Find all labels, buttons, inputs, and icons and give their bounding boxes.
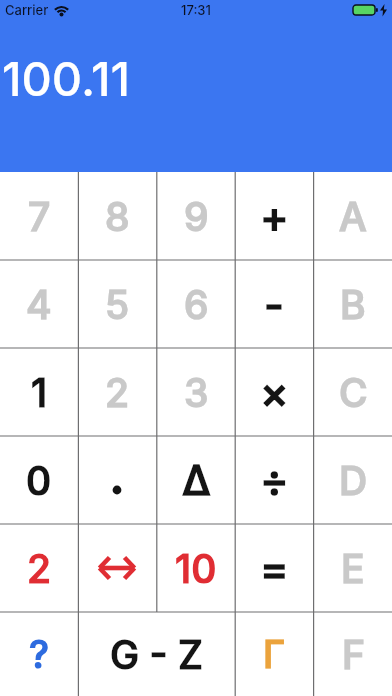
button[interactable]: E: [314, 524, 392, 612]
staticText: G - Z: [110, 631, 203, 678]
button[interactable]: 9: [157, 172, 235, 260]
staticText: F: [342, 631, 365, 678]
button[interactable]: B: [314, 260, 392, 348]
button[interactable]: ×: [235, 348, 313, 436]
staticText: 10: [175, 545, 217, 592]
button[interactable]: [78, 436, 156, 524]
staticText: B: [340, 281, 366, 328]
button[interactable]: 3: [157, 348, 235, 436]
staticText: 4: [26, 281, 52, 328]
staticText: Carrier: [5, 2, 49, 18]
staticText: 100.11: [2, 50, 131, 107]
button[interactable]: 0: [0, 436, 78, 524]
staticText: +: [260, 190, 289, 242]
button[interactable]: ÷: [235, 436, 313, 524]
button[interactable]: -: [235, 260, 313, 348]
button[interactable]: F: [314, 612, 392, 696]
staticText: 3: [184, 369, 209, 416]
staticText: ×: [260, 366, 289, 418]
staticText: Δ: [182, 455, 211, 505]
button[interactable]: [78, 524, 156, 612]
button[interactable]: ?: [0, 612, 78, 696]
button[interactable]: G - Z: [78, 612, 235, 696]
button[interactable]: Δ: [157, 436, 235, 524]
button[interactable]: C: [314, 348, 392, 436]
staticText: D: [339, 457, 368, 504]
button[interactable]: 7: [0, 172, 78, 260]
button[interactable]: A: [314, 172, 392, 260]
staticText: 2: [105, 369, 130, 416]
staticText: 17:31: [181, 2, 211, 18]
staticText: ?: [29, 631, 50, 677]
button[interactable]: 2: [0, 524, 78, 612]
button[interactable]: 4: [0, 260, 78, 348]
button[interactable]: 8: [78, 172, 156, 260]
staticText: 5: [105, 281, 130, 328]
button[interactable]: 1: [0, 348, 78, 436]
button[interactable]: 5: [78, 260, 156, 348]
staticText: E: [341, 545, 365, 592]
button[interactable]: 2: [78, 348, 156, 436]
button[interactable]: 10: [157, 524, 235, 612]
staticText: 6: [184, 281, 209, 328]
staticText: 8: [105, 193, 130, 240]
button[interactable]: D: [314, 436, 392, 524]
button[interactable]: =: [235, 524, 313, 612]
staticText: 9: [184, 193, 209, 240]
staticText: 0: [26, 457, 52, 504]
staticText: -: [264, 278, 284, 330]
staticText: =: [260, 542, 289, 594]
button[interactable]: 6: [157, 260, 235, 348]
staticText: 7: [28, 193, 51, 240]
staticText: 2: [27, 545, 52, 592]
staticText: 1: [31, 369, 48, 416]
staticText: A: [339, 193, 367, 240]
staticText: C: [339, 369, 368, 416]
staticText: ÷: [260, 454, 289, 506]
button[interactable]: Γ: [235, 612, 313, 696]
staticText: Γ: [263, 631, 286, 677]
button[interactable]: +: [235, 172, 313, 260]
